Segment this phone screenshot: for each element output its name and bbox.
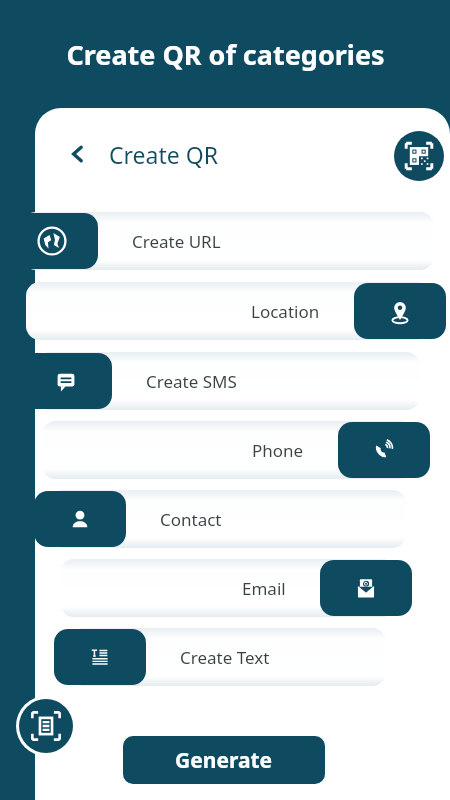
- button[interactable]: Location: [354, 283, 446, 339]
- staticText: Create SMS: [146, 370, 237, 393]
- staticText: Create URL: [132, 230, 221, 253]
- button[interactable]: Email: [320, 560, 412, 616]
- staticText: Create Text: [180, 646, 270, 669]
- staticText: Email: [242, 577, 286, 600]
- button[interactable]: Phone: [338, 422, 430, 478]
- button[interactable]: Create SMS: [20, 353, 112, 409]
- button[interactable]: Create SMS: [36, 352, 420, 410]
- button[interactable]: Phone: [42, 421, 414, 479]
- button[interactable]: Location: [26, 282, 430, 340]
- button[interactable]: Scan document: [19, 699, 73, 753]
- button[interactable]: Scan QR code: [394, 131, 444, 181]
- button[interactable]: Generate: [123, 736, 325, 784]
- staticText: Generate: [175, 746, 273, 775]
- button[interactable]: Create URL: [22, 212, 434, 270]
- button[interactable]: Email: [60, 559, 396, 617]
- staticText: Contact: [160, 508, 222, 531]
- staticText: Location: [251, 300, 320, 323]
- button[interactable]: Create URL: [6, 213, 98, 269]
- staticText: Create QR: [109, 139, 218, 170]
- button[interactable]: Contact: [34, 491, 126, 547]
- button[interactable]: Back: [55, 132, 99, 176]
- staticText: Phone: [252, 439, 304, 462]
- button[interactable]: Create Text: [70, 628, 386, 686]
- button[interactable]: Create Text: [54, 629, 146, 685]
- staticText: Create QR of categories: [66, 36, 385, 73]
- button[interactable]: Contact: [50, 490, 406, 548]
